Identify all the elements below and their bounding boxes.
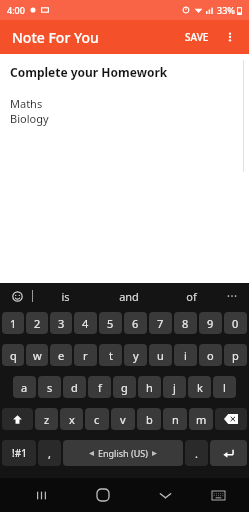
staticText: m xyxy=(196,412,207,427)
staticText: i xyxy=(184,348,187,363)
button[interactable]: p xyxy=(224,344,247,366)
button[interactable]: Space xyxy=(63,440,183,466)
button[interactable]: e xyxy=(50,344,72,366)
button[interactable]: SAVE xyxy=(179,26,215,48)
button[interactable]: !#1 xyxy=(2,440,36,466)
staticText: 1 xyxy=(10,316,17,331)
staticText: s xyxy=(47,380,53,395)
staticText: Maths xyxy=(10,96,43,111)
button[interactable]: w xyxy=(26,344,48,366)
staticText: a xyxy=(21,380,28,395)
staticText: 4:00 xyxy=(7,4,25,16)
button[interactable]: Enter xyxy=(210,440,247,466)
button[interactable]: g xyxy=(113,376,136,398)
staticText: , xyxy=(48,446,51,461)
button[interactable]: f xyxy=(88,376,111,398)
staticText: 9 xyxy=(207,316,214,331)
button[interactable]: Home xyxy=(88,480,118,510)
button[interactable]: h xyxy=(138,376,161,398)
button[interactable]: of xyxy=(160,289,223,304)
staticText: y xyxy=(133,348,139,363)
staticText: n xyxy=(172,412,179,427)
staticText: x xyxy=(69,412,75,427)
button[interactable]: 4 xyxy=(74,312,97,334)
button[interactable]: Stickers and emoji xyxy=(8,287,26,305)
button[interactable]: z xyxy=(35,408,58,430)
button[interactable]: 2 xyxy=(26,312,48,334)
staticText: q xyxy=(10,348,17,363)
staticText: u xyxy=(157,348,164,363)
button[interactable]: x xyxy=(60,408,83,430)
button[interactable]: o xyxy=(199,344,222,366)
staticText: English (US) xyxy=(98,447,148,459)
staticText: v xyxy=(120,412,126,427)
staticText: 8 xyxy=(182,316,189,331)
staticText: j xyxy=(173,380,176,395)
button[interactable]: q xyxy=(2,344,24,366)
button[interactable]: Shift xyxy=(2,408,33,430)
button[interactable]: 6 xyxy=(124,312,147,334)
staticText: 7 xyxy=(157,316,164,331)
staticText: g xyxy=(121,380,128,395)
button[interactable]: 7 xyxy=(149,312,172,334)
button[interactable]: i xyxy=(174,344,197,366)
button[interactable]: 3 xyxy=(50,312,72,334)
staticText: f xyxy=(98,380,102,395)
button[interactable]: 1 xyxy=(2,312,24,334)
staticText: p xyxy=(232,348,239,363)
staticText: l xyxy=(223,380,226,395)
staticText: 0 xyxy=(232,316,239,331)
button[interactable]: c xyxy=(85,408,109,430)
button[interactable]: More suggestions xyxy=(223,287,241,305)
staticText: 4 xyxy=(82,316,89,331)
button[interactable]: t xyxy=(99,344,122,366)
button[interactable]: b xyxy=(137,408,161,430)
staticText: z xyxy=(44,412,50,427)
button[interactable]: 5 xyxy=(99,312,122,334)
button[interactable]: d xyxy=(63,376,86,398)
button[interactable]: Backspace xyxy=(215,408,247,430)
button[interactable]: l xyxy=(213,376,236,398)
button[interactable]: s xyxy=(38,376,61,398)
button[interactable]: u xyxy=(149,344,172,366)
button[interactable]: Recents xyxy=(26,480,56,510)
button[interactable]: r xyxy=(74,344,97,366)
button[interactable]: n xyxy=(163,408,187,430)
staticText: SAVE xyxy=(185,30,209,44)
staticText: c xyxy=(94,412,100,427)
staticText: h xyxy=(146,380,153,395)
staticText: 3 xyxy=(58,316,65,331)
staticText: e xyxy=(58,348,65,363)
staticText: !#1 xyxy=(12,446,27,460)
button[interactable]: 0 xyxy=(224,312,247,334)
staticText: b xyxy=(146,412,153,427)
staticText: 33% xyxy=(217,4,235,16)
button[interactable]: Change keyboard xyxy=(203,480,233,510)
staticText: Biology xyxy=(10,111,49,126)
staticText: Complete your Homework xyxy=(10,64,168,80)
button[interactable]: v xyxy=(111,408,135,430)
staticText: o xyxy=(207,348,214,363)
staticText: t xyxy=(109,348,113,363)
staticText: 2 xyxy=(34,316,41,331)
staticText: Note For You xyxy=(12,28,99,47)
staticText: of xyxy=(186,289,197,304)
button[interactable]: k xyxy=(188,376,211,398)
button[interactable]: , xyxy=(38,440,61,466)
button[interactable]: More options xyxy=(215,22,245,52)
button[interactable]: j xyxy=(163,376,186,398)
staticText: d xyxy=(71,380,78,395)
button[interactable]: m xyxy=(189,408,213,430)
button[interactable]: . xyxy=(185,440,208,466)
button[interactable]: Hide keyboard xyxy=(150,480,180,510)
staticText: and xyxy=(119,289,139,304)
staticText: is xyxy=(61,289,70,304)
button[interactable]: a xyxy=(13,376,36,398)
button[interactable]: y xyxy=(124,344,147,366)
button[interactable]: 8 xyxy=(174,312,197,334)
button[interactable]: is xyxy=(33,289,97,304)
staticText: 6 xyxy=(132,316,139,331)
button[interactable]: 9 xyxy=(199,312,222,334)
button[interactable]: and xyxy=(97,289,160,304)
staticText: r xyxy=(83,348,88,363)
